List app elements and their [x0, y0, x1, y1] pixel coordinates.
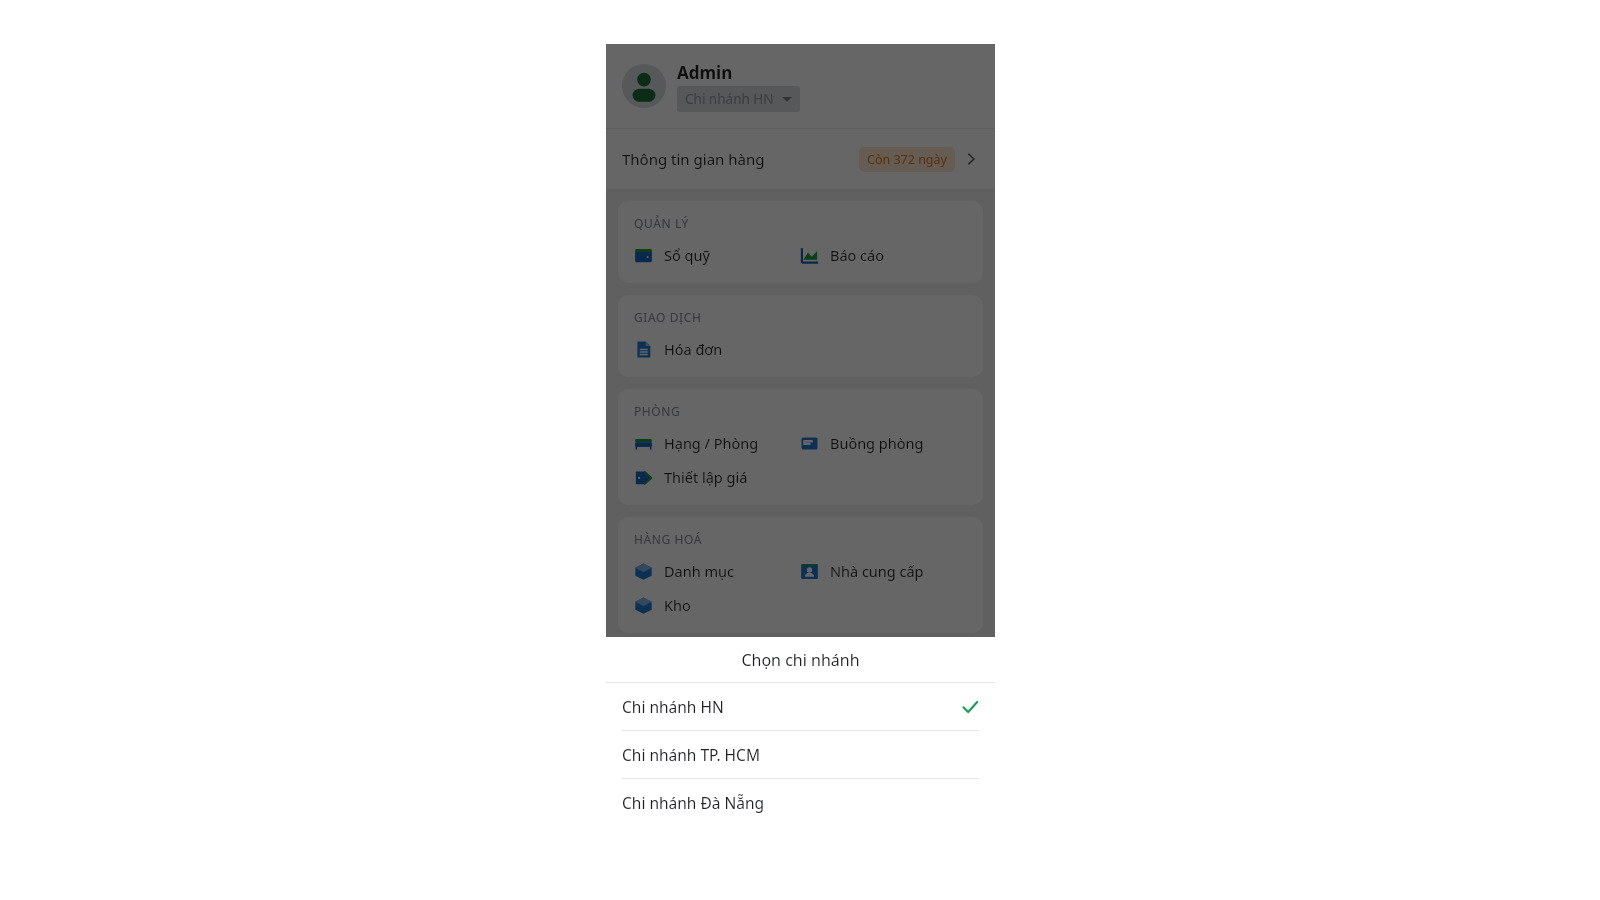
staticText: Thông tin gian hàng	[622, 149, 765, 169]
staticText: Nhà cung cấp	[830, 561, 924, 581]
staticText: Chi nhánh Đà Nẵng	[622, 792, 765, 813]
staticText: Chi nhánh TP. HCM	[622, 744, 760, 765]
button[interactable]: Báo cáo	[800, 245, 967, 265]
button[interactable]: Chi nhánh Đà Nẵng	[606, 779, 995, 826]
staticText: PHÒNG	[634, 403, 681, 419]
staticText: Hạng / Phòng	[664, 433, 759, 453]
staticText: QUẢN LÝ	[634, 215, 689, 231]
button[interactable]: Thông tin gian hàng	[606, 129, 995, 189]
staticText: Báo cáo	[830, 245, 884, 265]
button[interactable]: Chi nhánh TP. HCM	[606, 731, 995, 778]
button[interactable]: Danh mục	[634, 561, 800, 581]
button[interactable]: Buồng phòng	[800, 433, 967, 453]
button[interactable]: Hạng / Phòng	[634, 433, 800, 453]
staticText: Hóa đơn	[664, 339, 723, 359]
staticText: GIAO DỊCH	[634, 309, 702, 325]
staticText: HÀNG HOÁ	[634, 531, 703, 547]
staticText: Còn 372 ngày	[867, 151, 947, 168]
staticText: Chi nhánh HN	[685, 90, 774, 108]
staticText: Sổ quỹ	[664, 245, 710, 265]
button[interactable]: Thiết lập giá	[634, 467, 800, 487]
staticText: Chọn chi nhánh	[741, 649, 860, 671]
staticText: Buồng phòng	[830, 433, 924, 453]
staticText: Thiết lập giá	[664, 467, 748, 487]
other: Selected	[961, 698, 979, 716]
staticText: Danh mục	[664, 561, 734, 581]
staticText: Admin	[677, 61, 733, 84]
staticText: Kho	[664, 595, 691, 615]
button[interactable]: Chi nhánh HN	[606, 683, 995, 730]
button[interactable]: Chi nhánh HN	[677, 86, 800, 112]
button[interactable]: Nhà cung cấp	[800, 561, 967, 581]
button[interactable]: Kho	[634, 595, 800, 615]
button[interactable]: Hóa đơn	[634, 339, 800, 359]
button[interactable]: Sổ quỹ	[634, 245, 800, 265]
staticText: Chi nhánh HN	[622, 696, 724, 717]
